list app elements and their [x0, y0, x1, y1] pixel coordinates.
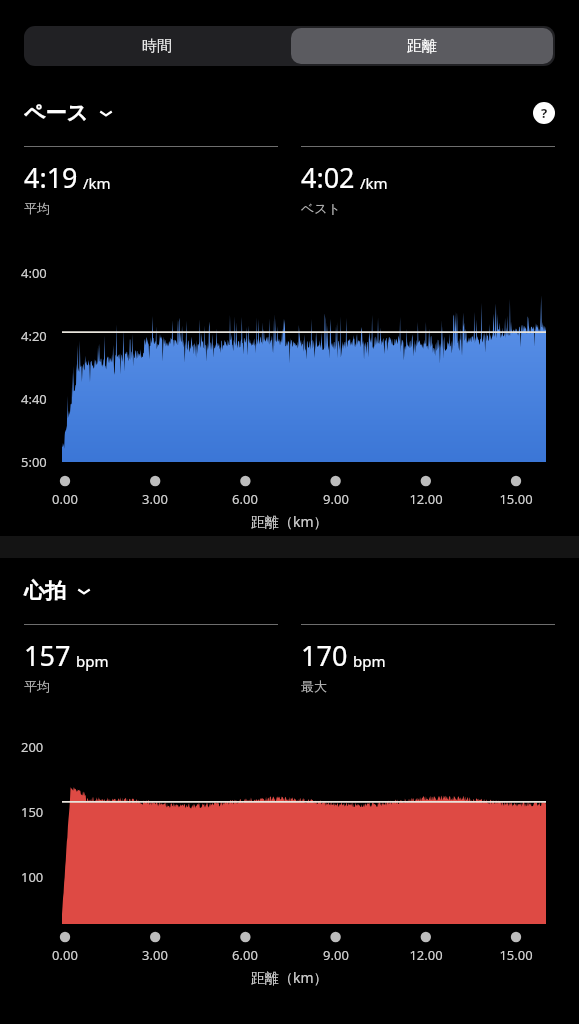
staticText: ベスト — [301, 200, 341, 216]
staticText: 100 — [21, 868, 44, 886]
staticText: 距離（km） — [251, 968, 328, 987]
button[interactable]: 時間 — [24, 26, 289, 66]
staticText: 4:00 — [21, 264, 47, 282]
staticText: 4:20 — [21, 327, 47, 345]
staticText: 157 — [24, 637, 71, 674]
staticText: /km — [83, 173, 111, 193]
button[interactable]: ペース — [24, 96, 115, 130]
staticText: bpm — [76, 651, 109, 671]
staticText: 170 — [301, 637, 348, 674]
staticText: 4:19 — [24, 159, 78, 196]
staticText: 距離（km） — [251, 512, 328, 531]
button[interactable]: 心拍 — [24, 574, 93, 608]
staticText: 15.00 — [499, 490, 533, 508]
staticText: 15.00 — [499, 946, 533, 964]
staticText: 9.00 — [323, 946, 349, 964]
staticText: ペース — [24, 100, 88, 126]
staticText: 4:02 — [301, 159, 355, 196]
staticText: 0.00 — [52, 946, 78, 964]
staticText: 3.00 — [142, 490, 168, 508]
staticText: 12.00 — [409, 490, 443, 508]
staticText: 平均 — [24, 200, 50, 216]
staticText: 平均 — [24, 678, 50, 694]
staticText: 4:40 — [21, 390, 47, 408]
staticText: 0.00 — [52, 490, 78, 508]
button[interactable]: Help — [531, 100, 557, 126]
staticText: 6.00 — [232, 490, 258, 508]
staticText: 5:00 — [21, 453, 47, 471]
staticText: 150 — [21, 803, 44, 821]
staticText: /km — [360, 173, 388, 193]
button[interactable]: 距離 — [291, 28, 553, 64]
staticText: 200 — [21, 738, 44, 756]
staticText: 3.00 — [142, 946, 168, 964]
staticText: 9.00 — [323, 490, 349, 508]
staticText: bpm — [353, 651, 386, 671]
staticText: 心拍 — [24, 578, 66, 604]
staticText: 最大 — [301, 678, 327, 694]
staticText: 距離 — [407, 37, 437, 56]
staticText: ? — [541, 104, 548, 122]
staticText: 6.00 — [232, 946, 258, 964]
staticText: 12.00 — [409, 946, 443, 964]
staticText: 時間 — [142, 37, 172, 56]
